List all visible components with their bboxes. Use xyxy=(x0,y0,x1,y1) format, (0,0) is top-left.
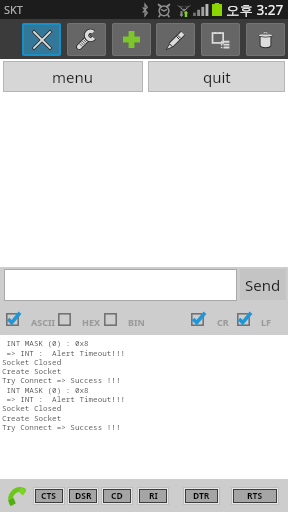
button[interactable]: Close xyxy=(22,23,61,56)
staticText: Create Socket xyxy=(2,413,62,423)
button[interactable] xyxy=(58,313,71,326)
staticText: => INT : Alert Timeout!!! xyxy=(2,348,126,358)
button[interactable] xyxy=(237,313,250,326)
button[interactable]: CD xyxy=(101,487,133,505)
staticText: Socket Closed xyxy=(2,403,62,413)
button[interactable]: CTS xyxy=(33,487,65,505)
button[interactable]: RI xyxy=(137,487,169,505)
staticText: 오후 3:27 xyxy=(226,1,284,19)
staticText: CTS xyxy=(41,490,57,502)
button[interactable]: Edit xyxy=(156,23,195,56)
staticText: DSR xyxy=(75,490,92,502)
staticText: Socket Closed xyxy=(2,357,62,367)
button[interactable]: Delete xyxy=(246,23,285,56)
button[interactable]: RTS xyxy=(231,487,279,505)
staticText: Try Connect => Success !!! xyxy=(2,375,121,385)
button[interactable]: quit xyxy=(148,61,285,92)
staticText: HEX xyxy=(82,316,100,328)
staticText: CR xyxy=(217,316,229,328)
button[interactable]: Add xyxy=(112,23,151,56)
button[interactable] xyxy=(6,313,19,326)
staticText: quit xyxy=(203,67,231,87)
button[interactable]: Send xyxy=(240,269,286,300)
staticText: => INT : Alert Timeout!!! xyxy=(2,394,126,404)
staticText: INT MASK (0) : 0x8 xyxy=(2,338,89,348)
button[interactable]: DTR xyxy=(183,487,220,505)
staticText: Send xyxy=(245,275,281,295)
button[interactable]: DSR xyxy=(67,487,99,505)
button[interactable]: menu xyxy=(3,61,143,92)
staticText: menu xyxy=(52,67,94,87)
staticText: CD xyxy=(111,490,123,502)
staticText: ASCII xyxy=(31,316,55,328)
staticText: Create Socket xyxy=(2,366,62,376)
staticText: LF xyxy=(261,316,271,328)
button[interactable]: Notes xyxy=(201,23,240,56)
button[interactable] xyxy=(191,313,204,326)
staticText: Try Connect => Success !!! xyxy=(2,422,121,432)
button[interactable]: Call xyxy=(6,485,27,506)
button[interactable] xyxy=(4,269,237,301)
button[interactable] xyxy=(104,313,117,326)
staticText: RTS xyxy=(247,490,263,502)
staticText: BIN xyxy=(128,316,145,328)
staticText: RI xyxy=(149,490,158,502)
staticText: SKT xyxy=(4,2,23,17)
staticText: DTR xyxy=(193,490,210,502)
staticText: INT MASK (0) : 0x8 xyxy=(2,385,89,395)
button[interactable]: Settings xyxy=(67,23,106,56)
